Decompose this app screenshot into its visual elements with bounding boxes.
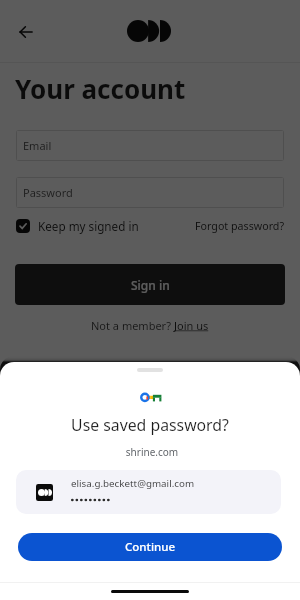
staticText: Email (23, 138, 52, 153)
staticText: Forgot password? (195, 219, 285, 234)
staticText: elisa.g.beckett@gmail.com (71, 477, 195, 490)
staticText: Sign in (131, 277, 170, 293)
staticText: Not a member? (91, 318, 174, 333)
button[interactable]: Join us (174, 318, 209, 333)
button[interactable]: Continue (18, 533, 282, 561)
staticText: shrine.com (2, 445, 300, 459)
staticText: Your account (15, 71, 186, 106)
staticText: Password (23, 185, 73, 200)
staticText: Use saved password? (0, 414, 300, 436)
button[interactable]: Password (16, 177, 284, 208)
staticText: Continue (125, 539, 176, 555)
button[interactable]: Forgot password? (195, 219, 285, 234)
button[interactable]: Back (14, 20, 38, 44)
button[interactable]: Sign in (15, 264, 285, 305)
button[interactable]: elisa.g.beckett@gmail.com (16, 470, 281, 514)
button[interactable]: Email (16, 130, 284, 161)
staticText: Keep my signed in (38, 218, 139, 234)
button[interactable]: Keep my signed in (16, 218, 139, 234)
